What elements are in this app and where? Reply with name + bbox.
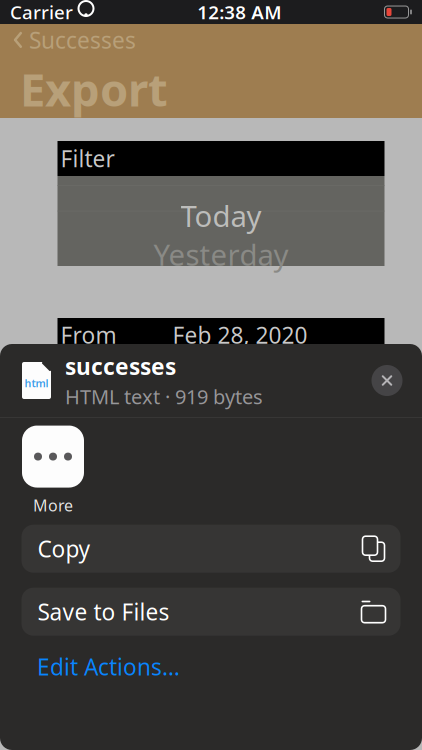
staticText: Save to Files: [37, 597, 169, 627]
staticText: Copy: [37, 534, 90, 564]
staticText: Edit Actions…: [37, 652, 180, 682]
button[interactable]: Copy: [21, 525, 400, 573]
button[interactable]: Save to Files: [21, 588, 400, 636]
staticText: From: [60, 320, 116, 350]
staticText: Carrier: [10, 0, 73, 24]
staticText: Successes: [29, 25, 136, 55]
staticText: Filter: [60, 143, 114, 173]
staticText: successes: [65, 351, 176, 381]
button[interactable]: Successes: [0, 23, 146, 57]
staticText: Today: [180, 196, 261, 235]
staticText: 12:38 AM: [197, 0, 281, 24]
staticText: Feb 28, 2020: [172, 320, 307, 350]
staticText: Export: [20, 59, 168, 119]
staticText: Yesterday: [153, 235, 288, 274]
button[interactable]: Edit Actions…: [0, 644, 422, 690]
staticText: HTML text · 919 bytes: [65, 383, 263, 410]
staticText: html: [24, 376, 48, 390]
staticText: More: [33, 495, 73, 516]
button[interactable]: More: [16, 420, 90, 522]
button[interactable]: Close: [365, 358, 409, 402]
